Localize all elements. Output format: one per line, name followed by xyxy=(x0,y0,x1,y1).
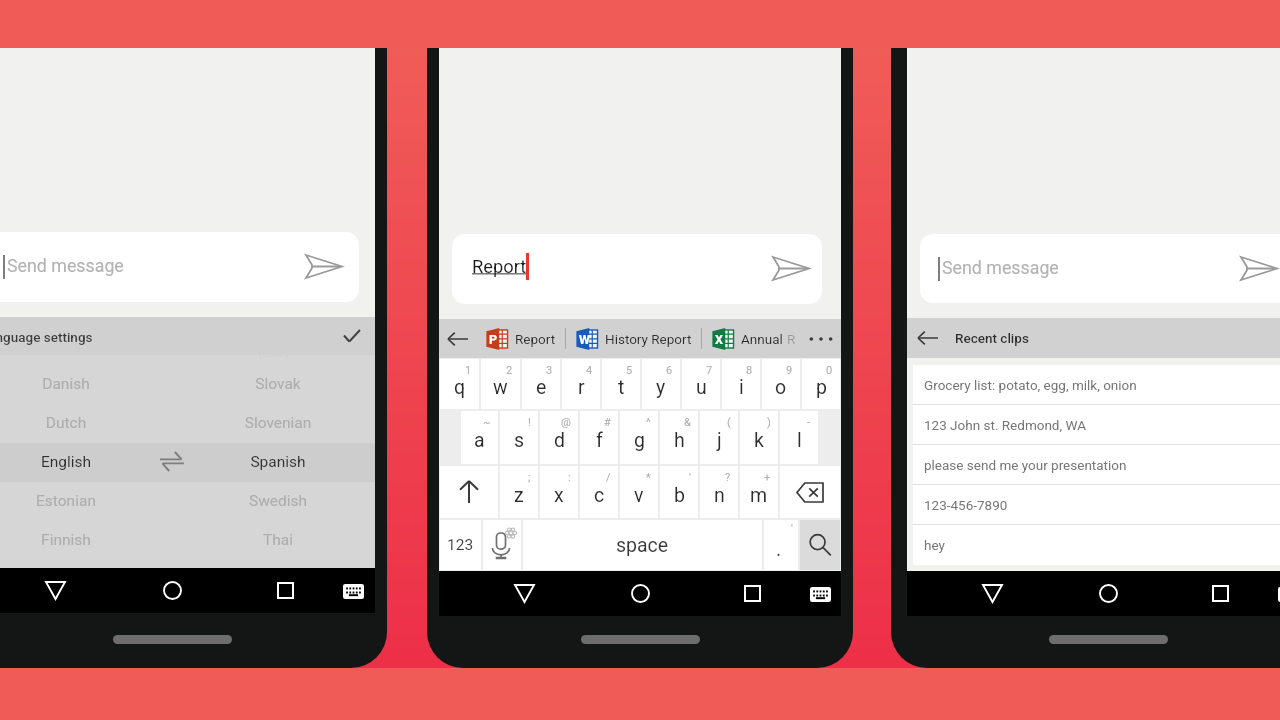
staticText: Danish xyxy=(0,375,136,393)
button[interactable]: Recent clips xyxy=(907,318,1280,358)
button[interactable]: 1 xyxy=(440,359,479,409)
button[interactable]: ( xyxy=(700,411,738,464)
staticText: 9 xyxy=(786,364,793,377)
button[interactable]: Send xyxy=(765,247,817,289)
button[interactable]: 7 xyxy=(682,359,720,409)
staticText: History Report xyxy=(605,331,692,347)
staticText: ; xyxy=(528,471,531,484)
button[interactable]: Switch keyboard xyxy=(1273,579,1280,607)
button[interactable]: Finnish xyxy=(0,521,375,560)
button[interactable]: Send xyxy=(298,245,350,287)
staticText: w xyxy=(493,376,508,399)
button[interactable]: @ xyxy=(540,411,578,464)
button[interactable]: Backspace xyxy=(780,466,840,518)
button[interactable]: P xyxy=(485,328,556,350)
staticText: ~ xyxy=(483,416,491,429)
button[interactable]: * xyxy=(620,466,658,518)
button[interactable]: Estonian xyxy=(0,482,375,521)
staticText: f xyxy=(596,429,603,452)
button[interactable]: Confirm language selection xyxy=(332,318,372,354)
button[interactable]: ) xyxy=(740,411,778,464)
button[interactable]: Switch keyboard xyxy=(338,576,368,604)
staticText: Report xyxy=(515,331,556,347)
button[interactable]: Home xyxy=(623,576,657,610)
staticText: Grocery list: potato, egg, milk, onion xyxy=(924,377,1137,393)
button[interactable]: - xyxy=(780,411,818,464)
button[interactable]: 123 John st. Redmond, WA xyxy=(913,405,1280,444)
button[interactable]: 3 xyxy=(522,359,560,409)
button[interactable]: 123 xyxy=(440,520,481,570)
staticText: 123-456-7890 xyxy=(924,497,1008,513)
button[interactable]: ^ xyxy=(620,411,658,464)
button[interactable]: Recents xyxy=(735,576,769,610)
staticText: # xyxy=(604,416,611,429)
button[interactable]: hey xyxy=(913,525,1280,565)
button[interactable]: 0 xyxy=(802,359,840,409)
button[interactable]: W xyxy=(575,328,692,350)
button[interactable]: ; xyxy=(500,466,538,518)
staticText: ! xyxy=(528,416,531,429)
staticText: o xyxy=(775,376,787,399)
staticText: 2 xyxy=(506,364,513,377)
button[interactable]: & xyxy=(660,411,698,464)
staticText: 8 xyxy=(746,364,753,377)
button[interactable]: ? xyxy=(700,466,738,518)
button[interactable]: Back xyxy=(507,576,541,610)
button[interactable]: Report xyxy=(452,234,822,304)
button[interactable]: 5 xyxy=(602,359,640,409)
button[interactable]: 8 xyxy=(722,359,760,409)
button[interactable]: ! xyxy=(500,411,538,464)
staticText: z xyxy=(514,484,524,507)
staticText: Send message xyxy=(7,255,124,276)
button[interactable]: ' xyxy=(660,466,698,518)
button[interactable]: . xyxy=(764,520,798,570)
button[interactable]: 123-456-7890 xyxy=(913,485,1280,524)
button[interactable]: Home xyxy=(155,573,189,607)
staticText: t xyxy=(618,376,625,399)
button[interactable]: 2 xyxy=(481,359,520,409)
button[interactable]: Home xyxy=(1091,576,1125,610)
staticText: l xyxy=(797,429,802,452)
button[interactable]: Recents xyxy=(1203,576,1237,610)
button[interactable]: Language settings xyxy=(0,317,375,355)
button[interactable]: space xyxy=(523,520,762,570)
button[interactable]: X xyxy=(711,328,796,350)
button[interactable]: Back xyxy=(38,573,72,607)
staticText: r xyxy=(578,376,585,399)
staticText: y xyxy=(656,376,666,399)
button[interactable]: # xyxy=(580,411,618,464)
button[interactable]: Search xyxy=(800,520,840,570)
button[interactable]: English xyxy=(0,443,375,482)
staticText: @ xyxy=(561,416,571,429)
button[interactable]: Grocery list: potato, egg, milk, onion xyxy=(913,365,1280,404)
button[interactable]: Shift xyxy=(440,466,498,518)
button[interactable]: More suggestions xyxy=(805,319,837,358)
staticText: h xyxy=(674,429,685,452)
staticText: - xyxy=(807,416,811,429)
staticText: hey xyxy=(924,537,945,553)
button[interactable]: Send message xyxy=(0,232,359,302)
button[interactable]: Voice input xyxy=(483,520,521,570)
button[interactable]: Send message xyxy=(920,234,1280,303)
button[interactable]: ~ xyxy=(461,411,498,464)
staticText: ' xyxy=(689,471,691,484)
staticText: d xyxy=(554,429,565,452)
button[interactable]: Send xyxy=(1233,247,1280,289)
button[interactable]: : xyxy=(540,466,578,518)
button[interactable]: Dutch xyxy=(0,404,375,443)
button[interactable]: / xyxy=(580,466,618,518)
button[interactable]: Recents xyxy=(268,573,302,607)
button[interactable]: Back xyxy=(439,319,476,358)
button[interactable]: please send me your presentation xyxy=(913,445,1280,484)
button[interactable]: Danish xyxy=(0,365,375,404)
button[interactable]: Back xyxy=(975,576,1009,610)
button[interactable]: 4 xyxy=(562,359,600,409)
button[interactable]: 9 xyxy=(762,359,800,409)
staticText: ( xyxy=(727,416,731,429)
staticText: i xyxy=(739,376,744,399)
button[interactable]: + xyxy=(740,466,778,518)
button[interactable]: Switch keyboard xyxy=(805,579,835,607)
staticText: Spanish xyxy=(208,453,348,471)
button[interactable]: 6 xyxy=(642,359,680,409)
staticText: W xyxy=(579,332,590,347)
